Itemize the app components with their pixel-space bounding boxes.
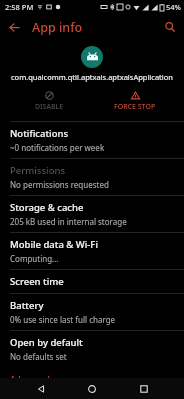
staticText: DISABLE [35,102,64,112]
staticText: No defaults set [10,351,67,362]
staticText: Advanced [10,374,50,386]
staticText: Mobile data & Wi-Fi [10,238,98,251]
button[interactable]: Advanced [0,367,184,391]
button[interactable]: Screen time [0,270,184,293]
staticText: Screen time [10,275,64,288]
staticText: 0% use since last full charge [10,314,116,325]
button[interactable]: Permissions [0,159,184,195]
staticText: com.qualcomm.qtil.aptxals.aptxalsApplica… [11,72,173,82]
button[interactable]: Search [159,16,181,38]
button[interactable]: Storage & cache [0,196,184,232]
staticText: Battery [10,299,44,312]
button[interactable]: Mobile data & Wi-Fi [0,233,184,269]
staticText: Open by default [10,336,83,349]
staticText: Permissions [10,164,66,177]
button[interactable]: FORCE STOP [97,90,173,113]
staticText: FORCE STOP [114,102,156,112]
staticText: ~0 notifications per week [10,142,105,153]
button[interactable]: Open by default [0,331,184,367]
staticText: 2:58 PM [5,2,34,12]
staticText: Computing… [10,253,59,264]
staticText: 54% [166,2,181,12]
button[interactable]: Back [2,15,26,39]
staticText: Notifications [10,127,69,140]
staticText: 205 kB used in internal storage [10,216,127,227]
staticText: No permissions requested [10,179,109,190]
button[interactable]: DISABLE [11,90,87,113]
staticText: Storage & cache [10,201,84,214]
button[interactable]: Home [81,378,103,399]
button[interactable]: Notifications [0,122,184,158]
staticText: App info [32,19,83,36]
button[interactable]: Recent apps [133,378,155,399]
button[interactable]: Battery [0,294,184,330]
button[interactable]: Modify system settings [0,391,184,399]
button[interactable]: Back [30,378,52,399]
